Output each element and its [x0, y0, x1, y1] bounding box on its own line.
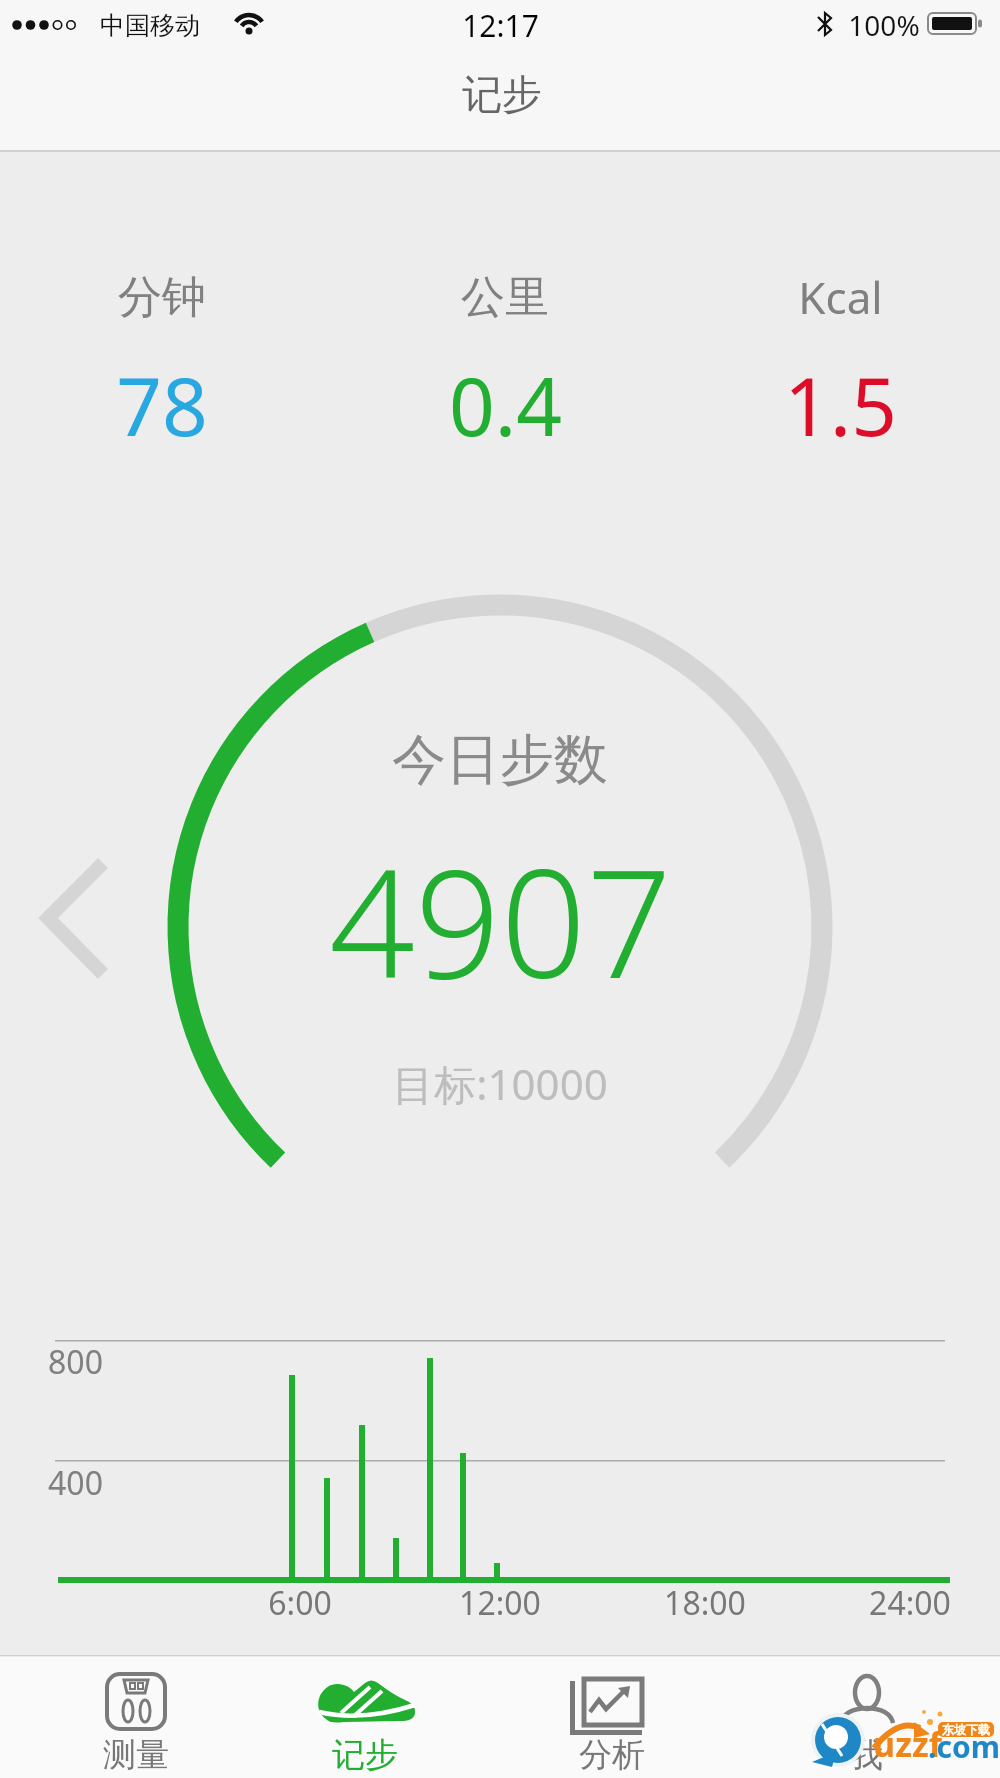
staticText: 100%: [848, 6, 920, 44]
staticText: 目标:10000: [392, 1055, 608, 1112]
staticText: 6:00: [268, 1581, 332, 1625]
staticText: 公里: [461, 270, 549, 325]
staticText: 记步: [332, 1734, 398, 1776]
button[interactable]: [0, 1656, 250, 1778]
staticText: 中国移动: [100, 10, 200, 41]
staticText: 我: [850, 1734, 883, 1776]
staticText: uzzf: [873, 1721, 942, 1767]
staticText: 78: [116, 350, 208, 459]
staticText: 800: [48, 1340, 103, 1384]
staticText: 24:00: [869, 1581, 951, 1625]
staticText: 4907: [329, 818, 672, 1022]
staticText: 18:00: [664, 1581, 746, 1625]
staticText: 测量: [103, 1734, 169, 1776]
staticText: 东坡下载: [942, 1722, 990, 1737]
staticText: .com: [928, 1726, 1000, 1767]
staticText: 12:17: [462, 5, 539, 46]
button[interactable]: [500, 1656, 750, 1778]
button[interactable]: [750, 1656, 1000, 1778]
staticText: 分析: [579, 1734, 645, 1776]
staticText: 记步: [462, 69, 542, 119]
button[interactable]: [250, 1656, 500, 1778]
staticText: 今日步数: [392, 726, 608, 794]
staticText: 12:00: [459, 1581, 541, 1625]
staticText: Kcal: [798, 267, 883, 327]
staticText: 0.4: [449, 350, 562, 459]
staticText: 分钟: [118, 270, 206, 325]
staticText: 400: [48, 1461, 103, 1505]
staticText: 1.5: [784, 350, 897, 459]
